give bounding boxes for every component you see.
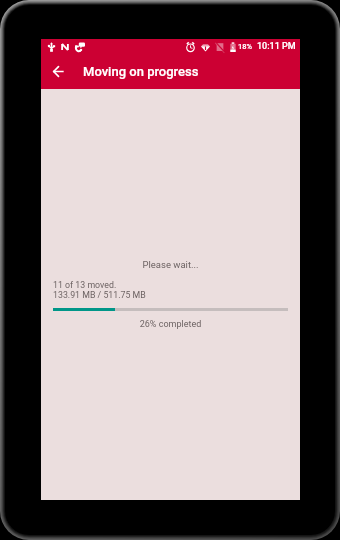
- staticText: Moving on progress: [83, 64, 199, 79]
- staticText: 11 of 13 moved.: [53, 280, 117, 290]
- staticText: 18%: [238, 42, 253, 51]
- staticText: 133.91 MB / 511.75 MB: [53, 290, 146, 300]
- staticText: Please wait...: [53, 259, 288, 270]
- button[interactable]: Back: [41, 54, 76, 89]
- staticText: 10:11 PM: [257, 41, 296, 52]
- staticText: 26% completed: [53, 319, 288, 330]
